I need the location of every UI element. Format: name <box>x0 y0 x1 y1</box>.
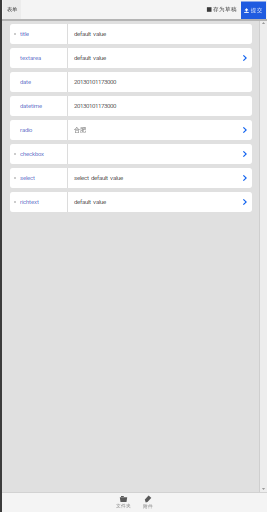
staticText: 存为草稿 <box>213 6 237 13</box>
staticText: 提交 <box>251 7 263 14</box>
staticText: datetime <box>20 103 42 109</box>
button[interactable]: select <box>10 168 252 188</box>
button[interactable]: 文件夹 <box>111 493 136 512</box>
button[interactable]: 存为草稿 <box>203 0 241 19</box>
staticText: richtext <box>20 199 39 205</box>
button[interactable]: datetime <box>10 96 252 116</box>
staticText: checkbox <box>20 151 44 157</box>
button[interactable]: textarea <box>10 48 252 68</box>
staticText: date <box>20 79 31 85</box>
staticText: default value <box>74 54 106 62</box>
button[interactable]: checkbox <box>10 144 252 164</box>
staticText: 表单 <box>7 6 17 13</box>
button[interactable]: radio <box>10 120 252 140</box>
staticText: textarea <box>20 55 41 61</box>
staticText: 20130101173000 <box>74 78 116 86</box>
staticText: 合肥 <box>74 126 86 134</box>
button[interactable]: 提交 <box>241 0 267 19</box>
button[interactable]: 附件 <box>136 493 160 512</box>
staticText: default value <box>74 198 106 206</box>
button[interactable]: title <box>10 24 252 44</box>
staticText: radio <box>20 127 32 133</box>
staticText: title <box>20 31 29 37</box>
staticText: 20130101173000 <box>74 102 116 110</box>
staticText: select <box>20 175 35 181</box>
button[interactable]: date <box>10 72 252 92</box>
staticText: select default value <box>74 174 123 182</box>
staticText: default value <box>74 30 106 38</box>
button[interactable]: richtext <box>10 192 252 212</box>
staticText: 附件 <box>143 503 153 509</box>
staticText: 文件夹 <box>116 503 131 509</box>
